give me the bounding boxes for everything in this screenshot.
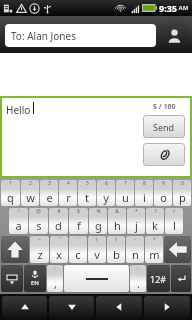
staticText: f [77,218,81,233]
staticText: k [152,218,158,233]
button[interactable]: ? [146,208,164,234]
button[interactable]: To: Alan Jones [5,24,156,47]
staticText: 7 [124,180,127,187]
button[interactable]: Left [96,296,142,318]
button[interactable]: ( [88,236,106,263]
staticText: j [135,218,138,233]
staticText: i [143,190,146,205]
button[interactable]: : [47,265,63,292]
button[interactable]: Backspace [164,236,191,263]
staticText: h [114,218,121,233]
staticText: To: Alan Jones [11,29,76,43]
staticText: ) [115,236,117,243]
button[interactable]: + [145,236,163,263]
staticText: w [26,190,35,205]
button[interactable]: Hide keyboard [1,265,23,292]
button[interactable]: " [50,236,68,263]
staticText: a [15,218,22,233]
button[interactable]: Enter [171,265,191,292]
button[interactable]: 5 [78,180,96,206]
button[interactable]: Attach [143,143,185,166]
staticText: ' [77,236,79,243]
staticText: - [134,236,136,243]
staticText: " [58,236,61,243]
staticText: b [113,247,120,262]
staticText: x [56,247,62,262]
staticText: % [96,208,101,215]
button[interactable]: % [89,208,107,234]
button[interactable]: 8 [135,180,153,206]
button[interactable]: # [49,208,68,234]
button[interactable]: 0 [173,180,191,206]
button[interactable]: Down [49,296,94,318]
button[interactable]: ! [9,208,28,234]
button[interactable]: 2 [21,180,39,206]
staticText: 8 [143,180,146,187]
staticText: / [173,208,175,215]
staticText: 5 / 160 [153,102,176,112]
button[interactable]: Pick contact [161,22,187,48]
button[interactable]: Voice input [24,265,46,292]
staticText: ~ [38,236,41,243]
staticText: 4 [67,180,70,187]
button[interactable]: Up [2,296,47,318]
staticText: o [160,190,167,205]
staticText: u [122,190,129,205]
staticText: e [46,190,53,205]
button[interactable]: Shift [1,236,29,263]
staticText: g [95,218,102,233]
button[interactable]: : [130,265,146,292]
staticText: l [173,218,176,233]
button[interactable]: Space [64,265,129,292]
staticText: 5 [86,180,89,187]
button[interactable]: 1 [1,180,20,206]
button[interactable]: ~ [30,236,49,263]
button[interactable]: 12# [147,265,170,292]
staticText: 2 [29,180,32,187]
staticText: c [75,247,81,262]
staticText: # [57,208,61,215]
button[interactable]: Right [144,296,190,318]
staticText: : [54,265,56,272]
button[interactable]: 9 [154,180,172,206]
button[interactable]: ) [107,236,125,263]
staticText: @ [36,208,41,215]
button[interactable]: 4 [59,180,77,206]
button[interactable]: & [108,208,126,234]
staticText: 9:35 [159,2,177,14]
staticText: y [103,190,109,205]
button[interactable]: @ [29,208,48,234]
staticText: 0 [181,180,184,187]
button[interactable]: Send [143,115,185,138]
button[interactable]: 3 [40,180,58,206]
staticText: q [7,190,14,205]
staticText: ! [18,208,20,215]
staticText: p [179,190,186,205]
staticText: n [132,247,139,262]
button[interactable]: / [165,208,183,234]
staticText: AM [177,4,189,12]
staticText: 12# [150,273,167,285]
staticText: d [55,218,62,233]
staticText: * [135,208,138,215]
staticText: z [37,247,43,262]
button[interactable]: 6 [97,180,115,206]
staticText: 6 [105,180,108,187]
staticText: , [54,276,57,291]
staticText: EN [31,279,39,287]
staticText: $ [77,208,80,215]
staticText: v [94,247,100,262]
button[interactable]: * [127,208,145,234]
staticText: ( [96,236,98,243]
staticText: Send [153,121,175,133]
staticText: : [137,265,139,272]
staticText: Hello [6,103,31,117]
button[interactable]: ' [69,236,87,263]
button[interactable]: 7 [116,180,134,206]
button[interactable]: - [126,236,144,263]
staticText: 3 [48,180,51,187]
staticText: 1 [9,180,12,187]
staticText: s [36,218,42,233]
staticText: ? [154,208,157,215]
button[interactable]: $ [69,208,88,234]
